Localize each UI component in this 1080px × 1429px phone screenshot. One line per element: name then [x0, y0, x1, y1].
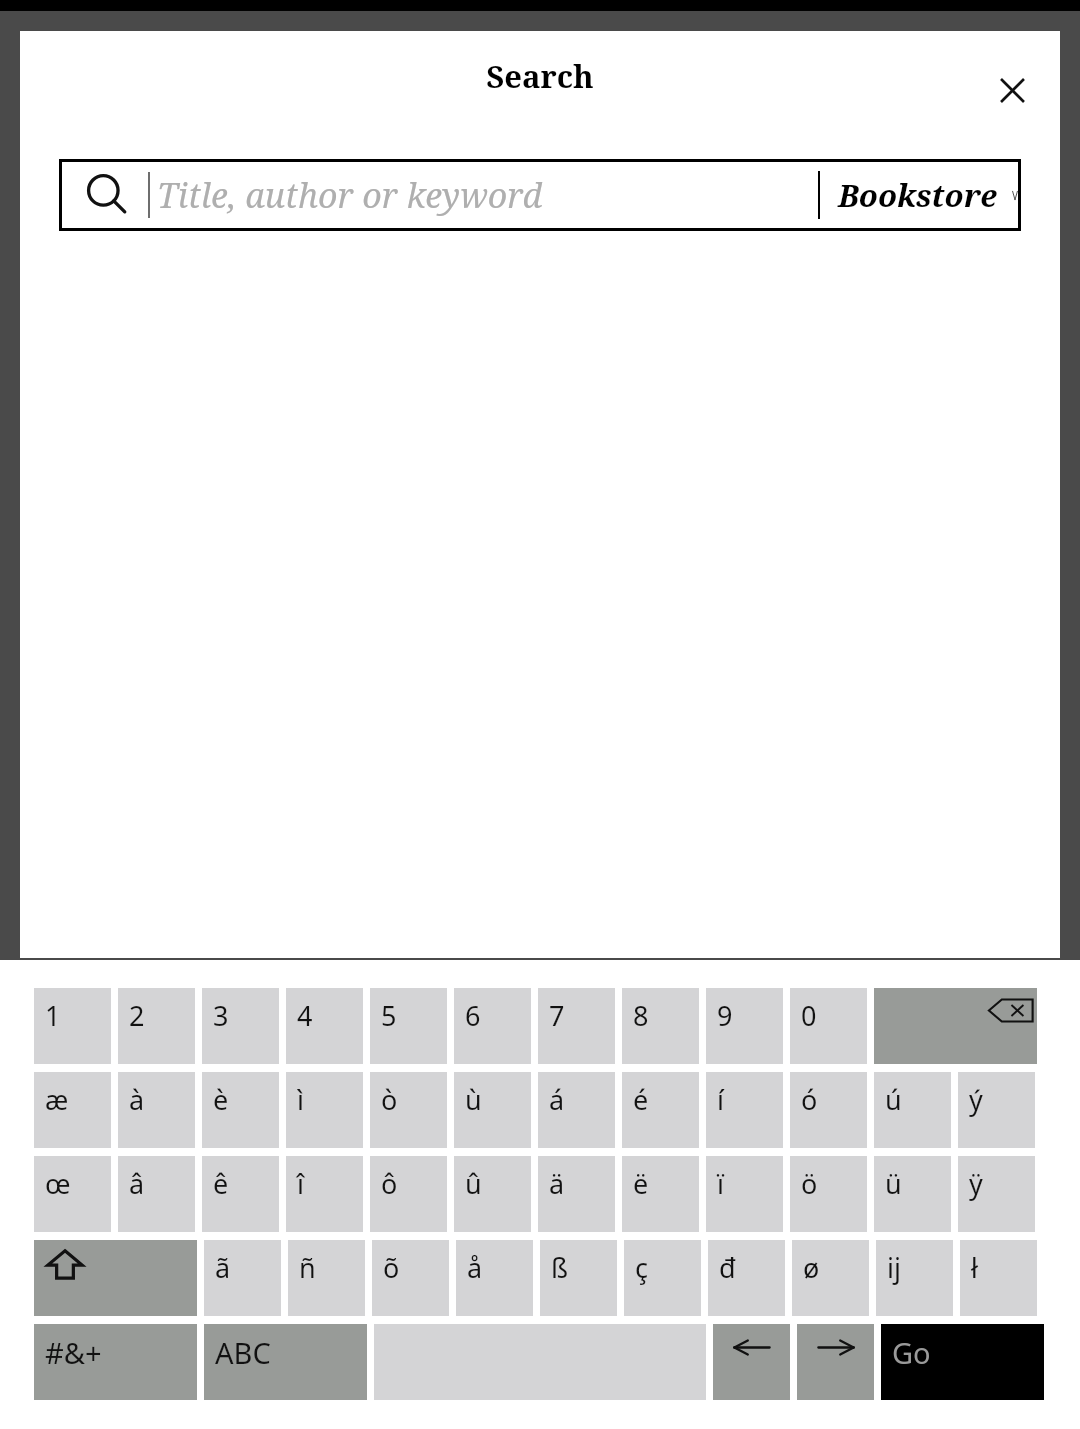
button[interactable]: ë	[622, 1156, 699, 1232]
staticText: ì	[297, 1081, 304, 1118]
button[interactable]: ã	[204, 1240, 281, 1316]
button[interactable]: ł	[960, 1240, 1037, 1316]
button[interactable]: î	[286, 1156, 363, 1232]
button[interactable]: ì	[286, 1072, 363, 1148]
button[interactable]: ç	[624, 1240, 701, 1316]
button[interactable]: ij	[876, 1240, 953, 1316]
staticText: 0	[801, 997, 817, 1034]
staticText: è	[213, 1081, 229, 1118]
button[interactable]: Go	[881, 1324, 1044, 1400]
staticText: ç	[635, 1249, 648, 1286]
button[interactable]: 7	[538, 988, 615, 1064]
button[interactable]: 6	[454, 988, 531, 1064]
button[interactable]: 5	[370, 988, 447, 1064]
button[interactable]: ý	[958, 1072, 1035, 1148]
button[interactable]: õ	[372, 1240, 449, 1316]
button[interactable]: ö	[790, 1156, 867, 1232]
staticText: 7	[549, 997, 565, 1034]
staticText: Bookstore	[838, 174, 997, 216]
staticText: ó	[801, 1081, 818, 1118]
button[interactable]: 1	[34, 988, 111, 1064]
staticText: ã	[215, 1249, 231, 1286]
staticText: 5	[381, 997, 397, 1034]
button[interactable]: æ	[34, 1072, 111, 1148]
button[interactable]: 0	[790, 988, 867, 1064]
staticText: ù	[465, 1081, 482, 1118]
staticText: 1	[45, 997, 61, 1034]
staticText: á	[549, 1081, 565, 1118]
button[interactable]: Bookstore	[820, 162, 1018, 228]
staticText: ô	[381, 1165, 398, 1202]
staticText: ý	[969, 1081, 983, 1118]
staticText: ü	[885, 1165, 902, 1202]
button[interactable]: â	[118, 1156, 195, 1232]
button[interactable]: 8	[622, 988, 699, 1064]
staticText: ö	[801, 1165, 818, 1202]
button[interactable]: ABC	[204, 1324, 367, 1400]
staticText: ê	[213, 1165, 229, 1202]
button[interactable]: Backspace	[874, 988, 1037, 1064]
button[interactable]: 4	[286, 988, 363, 1064]
button[interactable]: 3	[202, 988, 279, 1064]
staticText: 2	[129, 997, 145, 1034]
staticText: õ	[383, 1249, 400, 1286]
button[interactable]: Title, author or keyword	[157, 162, 818, 228]
button[interactable]: œ	[34, 1156, 111, 1232]
staticText: à	[129, 1081, 145, 1118]
button[interactable]: Close	[967, 45, 1057, 135]
staticText: 3	[213, 997, 229, 1034]
staticText: é	[633, 1081, 649, 1118]
staticText: û	[465, 1165, 482, 1202]
button[interactable]: ú	[874, 1072, 951, 1148]
staticText: í	[717, 1081, 724, 1118]
button[interactable]: ù	[454, 1072, 531, 1148]
staticText: 6	[465, 997, 481, 1034]
button[interactable]: ø	[792, 1240, 869, 1316]
button[interactable]: ê	[202, 1156, 279, 1232]
button[interactable]: ó	[790, 1072, 867, 1148]
staticText: ú	[885, 1081, 902, 1118]
button[interactable]: 9	[706, 988, 783, 1064]
button[interactable]: ü	[874, 1156, 951, 1232]
staticText: ä	[549, 1165, 565, 1202]
button[interactable]: ô	[370, 1156, 447, 1232]
button[interactable]: ñ	[288, 1240, 365, 1316]
staticText: Search	[486, 55, 594, 97]
staticText: ł	[971, 1249, 978, 1286]
button[interactable]: í	[706, 1072, 783, 1148]
staticText: ø	[803, 1249, 820, 1286]
staticText: đ	[719, 1249, 736, 1286]
staticText: å	[467, 1249, 483, 1286]
staticText: ï	[717, 1165, 724, 1202]
button[interactable]: 2	[118, 988, 195, 1064]
button[interactable]: ò	[370, 1072, 447, 1148]
button[interactable]: å	[456, 1240, 533, 1316]
button[interactable]: Shift	[34, 1240, 197, 1316]
staticText: ß	[551, 1249, 569, 1286]
button[interactable]: ï	[706, 1156, 783, 1232]
button[interactable]: Move cursor right	[797, 1324, 874, 1400]
staticText: ij	[887, 1249, 901, 1286]
staticText: 9	[717, 997, 733, 1034]
staticText: Go	[892, 1333, 931, 1372]
button[interactable]: ß	[540, 1240, 617, 1316]
staticText: ë	[633, 1165, 649, 1202]
button[interactable]: û	[454, 1156, 531, 1232]
staticText: ABC	[215, 1333, 271, 1372]
staticText: æ	[45, 1081, 69, 1118]
button[interactable]: é	[622, 1072, 699, 1148]
staticText: #&+	[45, 1333, 102, 1372]
staticText: â	[129, 1165, 145, 1202]
button[interactable]: ÿ	[958, 1156, 1035, 1232]
staticText: ñ	[299, 1249, 316, 1286]
button[interactable]: á	[538, 1072, 615, 1148]
button[interactable]: đ	[708, 1240, 785, 1316]
button[interactable]: Move cursor left	[713, 1324, 790, 1400]
button[interactable]: à	[118, 1072, 195, 1148]
button[interactable]: è	[202, 1072, 279, 1148]
staticText: î	[297, 1165, 304, 1202]
button[interactable]: #&+	[34, 1324, 197, 1400]
staticText: Title, author or keyword	[157, 172, 543, 218]
button[interactable]: ä	[538, 1156, 615, 1232]
